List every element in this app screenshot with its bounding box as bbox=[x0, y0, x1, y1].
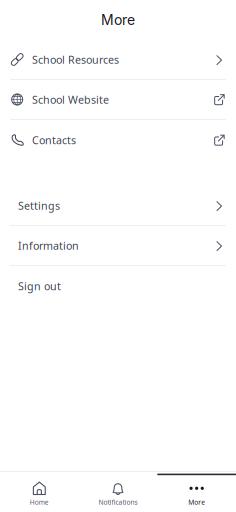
button[interactable]: School Resources bbox=[0, 40, 236, 79]
staticText: School Resources bbox=[32, 52, 119, 67]
staticText: Notifications bbox=[98, 498, 137, 507]
button[interactable]: School Website bbox=[0, 80, 236, 119]
staticText: Settings bbox=[18, 198, 60, 213]
staticText: Information bbox=[18, 238, 79, 253]
button[interactable]: Sign out bbox=[0, 266, 236, 306]
staticText: Home bbox=[30, 498, 49, 507]
staticText: More bbox=[101, 11, 135, 28]
button[interactable]: Settings bbox=[0, 186, 236, 225]
button[interactable]: Contacts bbox=[0, 120, 236, 160]
button[interactable]: Information bbox=[0, 226, 236, 265]
button[interactable]: Home bbox=[0, 474, 79, 512]
button[interactable]: More bbox=[157, 474, 236, 512]
staticText: School Website bbox=[32, 92, 109, 107]
button[interactable]: Notifications bbox=[79, 474, 157, 512]
staticText: Contacts bbox=[32, 133, 76, 147]
staticText: Sign out bbox=[18, 279, 61, 293]
staticText: More bbox=[188, 498, 205, 507]
